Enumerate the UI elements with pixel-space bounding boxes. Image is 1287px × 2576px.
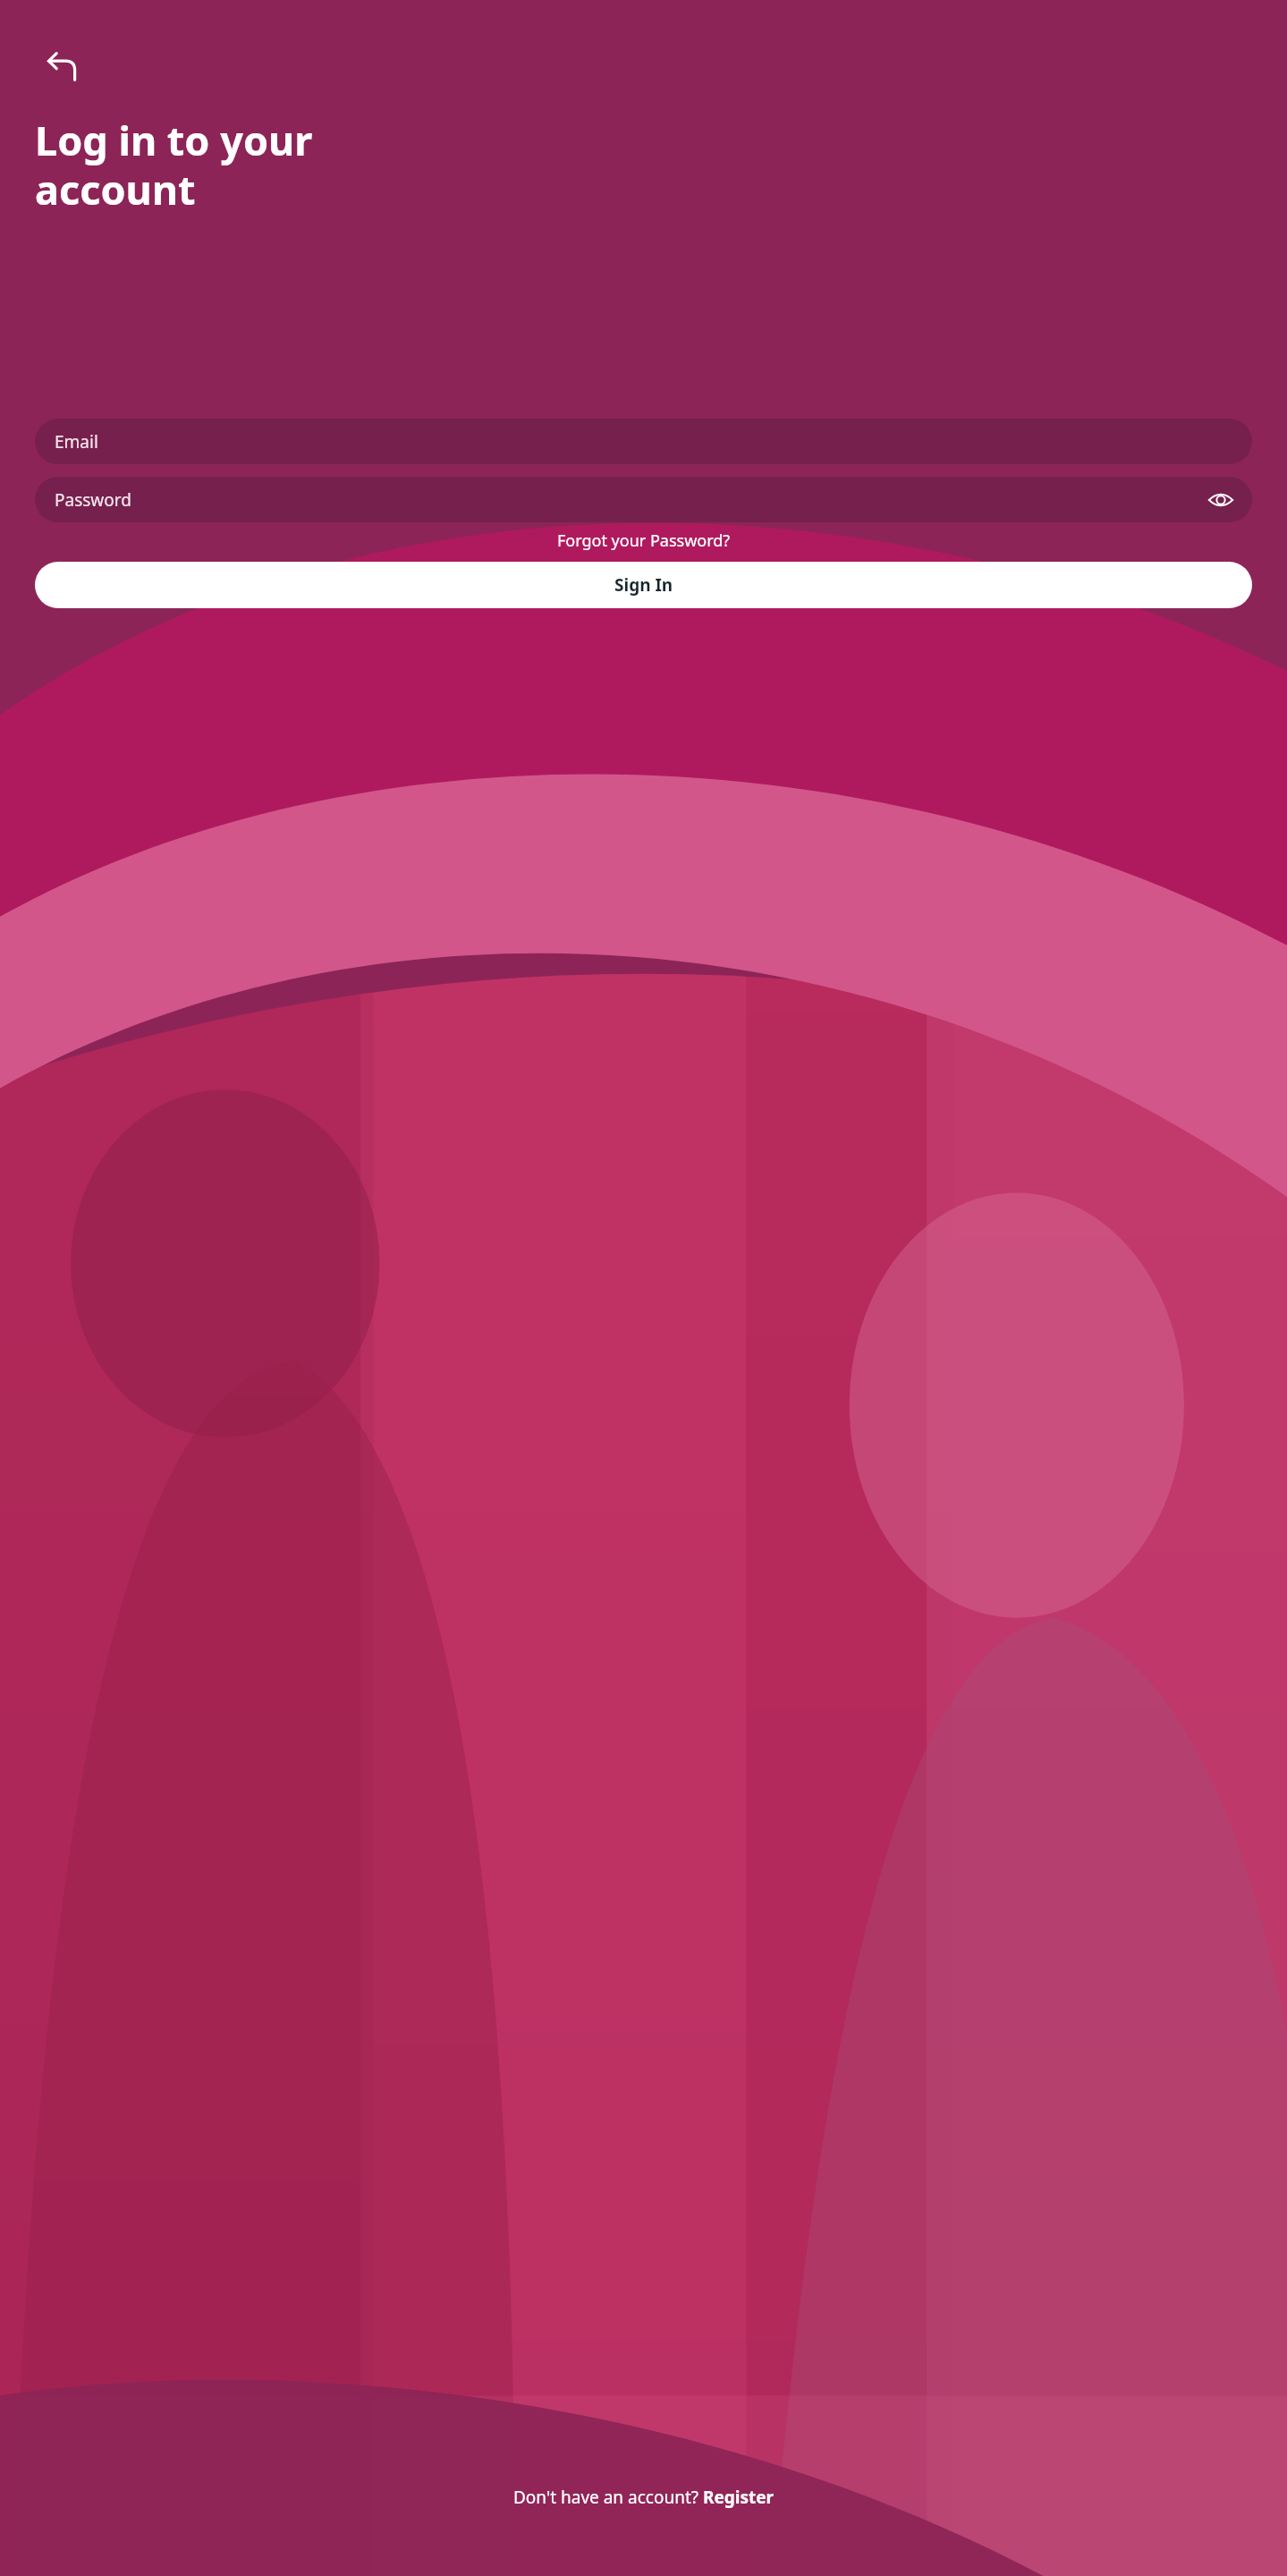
staticText: Log in to your account	[35, 113, 313, 216]
button[interactable]: Password	[35, 477, 1252, 522]
button[interactable]: Forgot your Password?	[0, 530, 1287, 552]
button[interactable]: Back	[41, 45, 84, 88]
button[interactable]: Email	[35, 419, 1252, 464]
staticText: Sign In	[614, 573, 673, 597]
staticText: Forgot your Password?	[557, 530, 731, 552]
button[interactable]: Don't have an account? Register	[0, 2486, 1287, 2509]
staticText: Email	[55, 430, 98, 453]
button[interactable]: Show password	[1204, 483, 1238, 517]
button[interactable]: Sign In	[35, 562, 1252, 608]
staticText: Password	[55, 488, 131, 512]
staticText: Don't have an account? Register	[513, 2486, 775, 2509]
